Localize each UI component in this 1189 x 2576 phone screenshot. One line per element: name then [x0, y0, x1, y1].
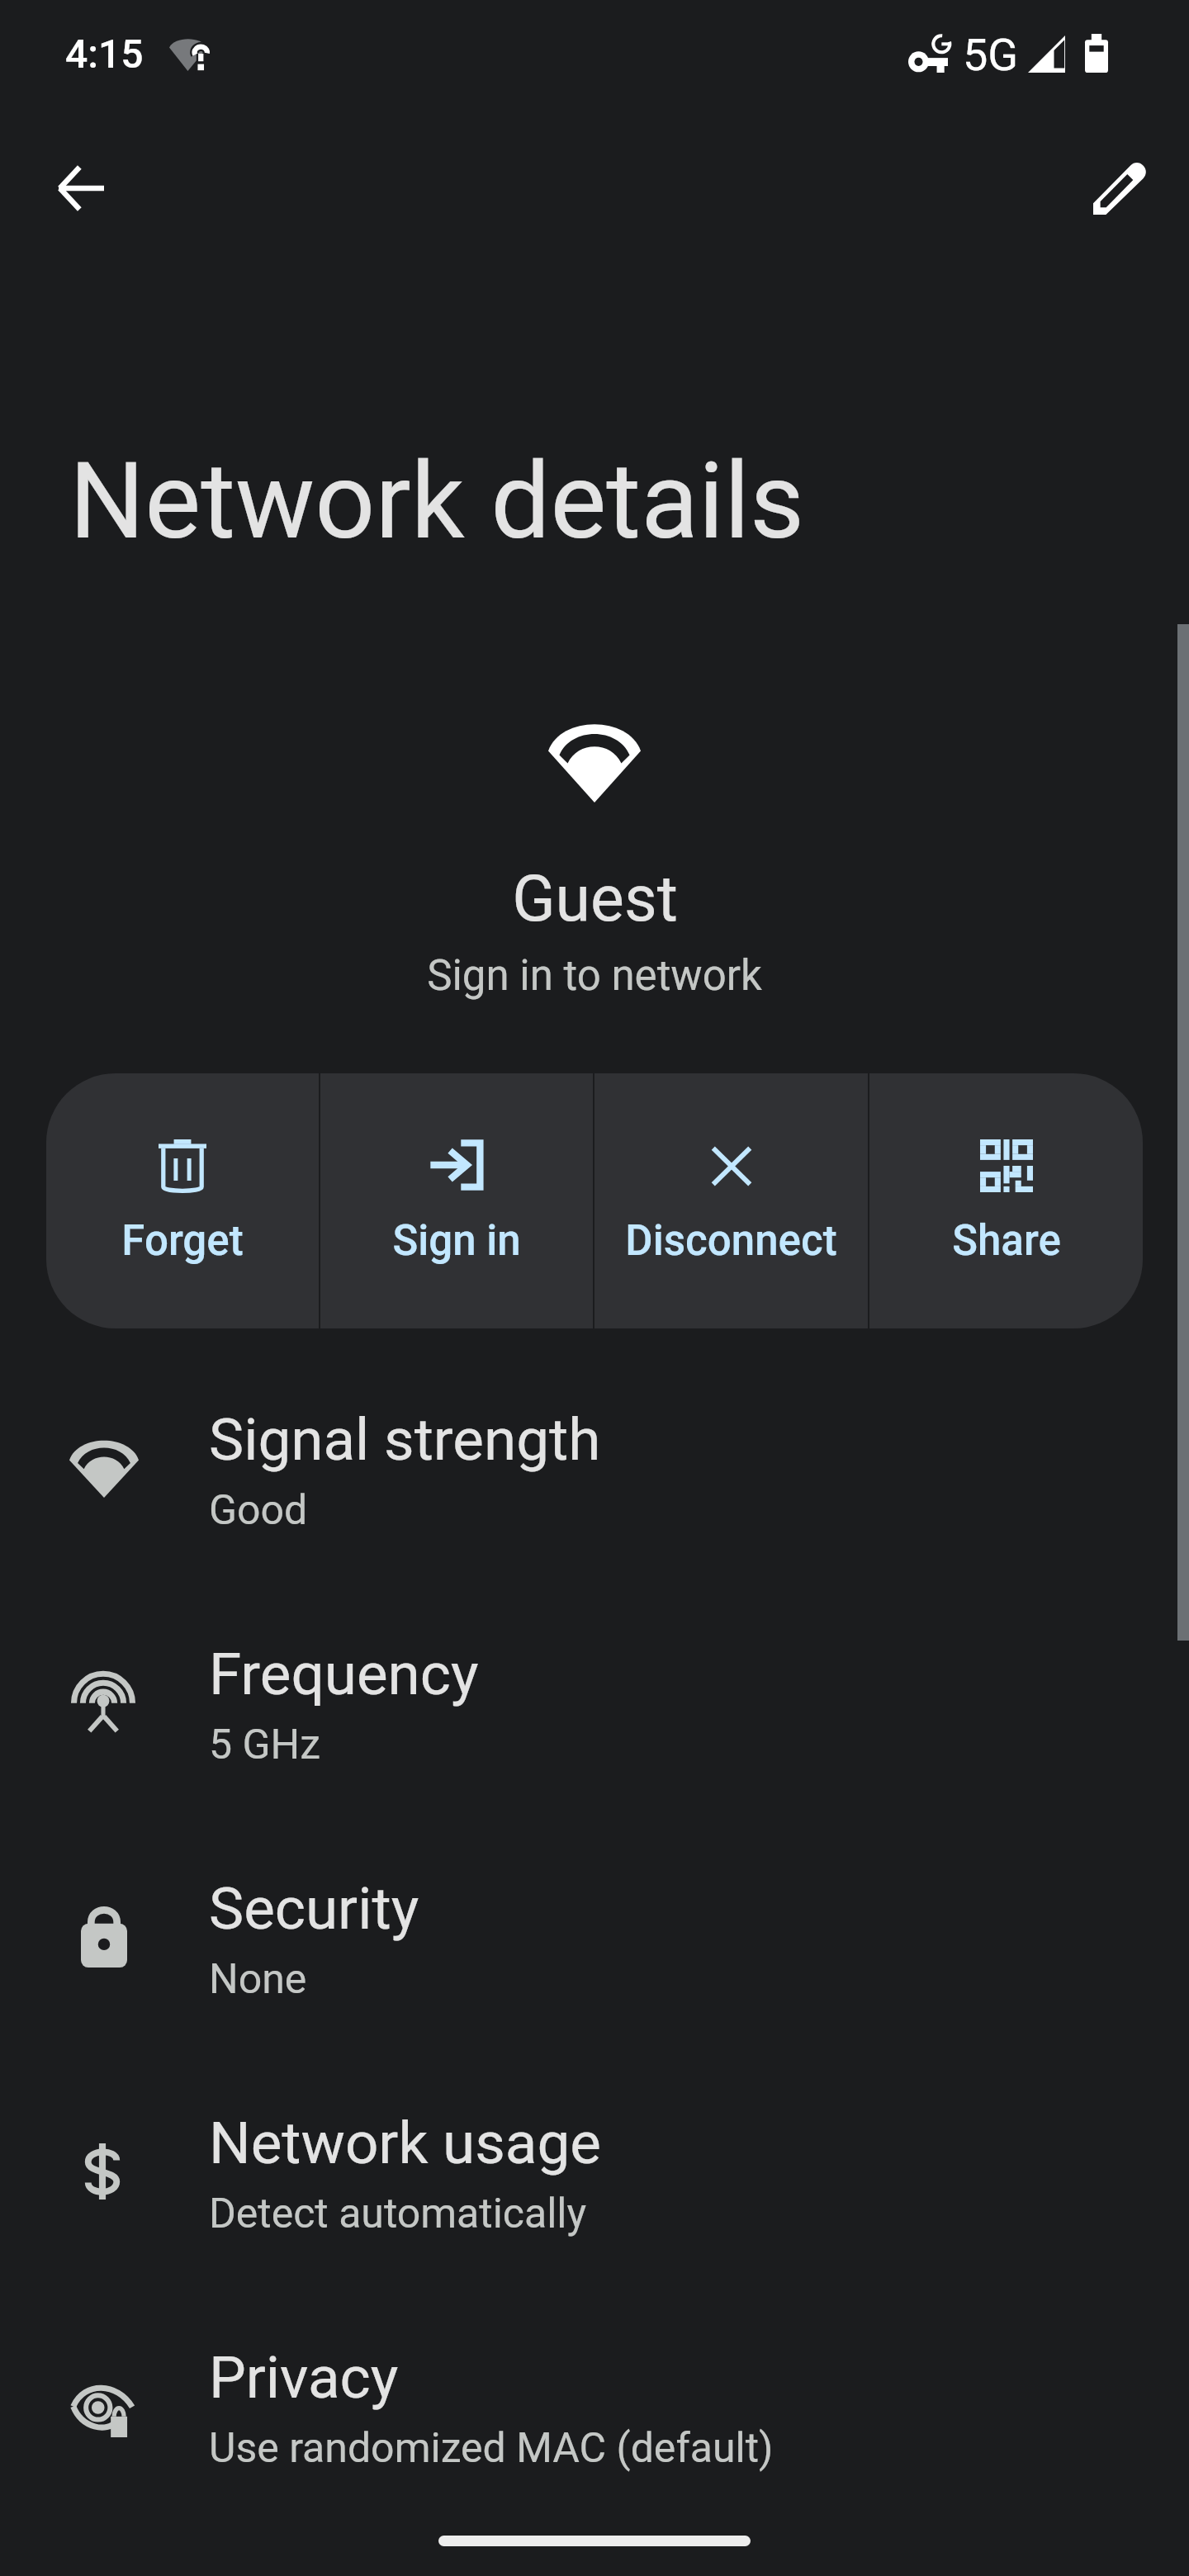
- button[interactable]: Forget: [46, 1073, 319, 1328]
- staticText: 5G: [963, 29, 1019, 81]
- staticText: Share: [952, 1216, 1061, 1266]
- staticText: Guest: [512, 862, 678, 936]
- staticText: None: [209, 1955, 307, 2004]
- button[interactable]: Frequency: [0, 1570, 1189, 1805]
- staticText: Detect automatically: [209, 2190, 587, 2238]
- staticText: 4:15: [65, 31, 144, 77]
- button[interactable]: Disconnect: [594, 1073, 868, 1328]
- button[interactable]: Signal strength: [0, 1336, 1189, 1570]
- staticText: Sign in: [392, 1216, 521, 1266]
- staticText: Privacy: [209, 2343, 399, 2412]
- button[interactable]: Share: [869, 1073, 1143, 1328]
- staticText: Disconnect: [625, 1216, 837, 1266]
- staticText: Forget: [121, 1216, 244, 1266]
- staticText: Security: [209, 1874, 419, 1943]
- staticText: Frequency: [209, 1640, 479, 1708]
- button[interactable]: Sign in: [320, 1073, 593, 1328]
- staticText: Network usage: [209, 2109, 601, 2177]
- button[interactable]: Back: [31, 139, 130, 238]
- button[interactable]: Network usage: [0, 2039, 1189, 2274]
- staticText: Use randomized MAC (default): [209, 2424, 774, 2473]
- staticText: Signal strength: [209, 1405, 601, 1474]
- staticText: 5 GHz: [209, 1721, 321, 1769]
- button[interactable]: Edit: [1070, 138, 1169, 237]
- staticText: Sign in to network: [427, 951, 762, 1001]
- button[interactable]: Security: [0, 1805, 1189, 2039]
- staticText: Good: [209, 1486, 308, 1535]
- staticText: Network details: [69, 439, 805, 563]
- button[interactable]: Privacy: [0, 2274, 1189, 2508]
